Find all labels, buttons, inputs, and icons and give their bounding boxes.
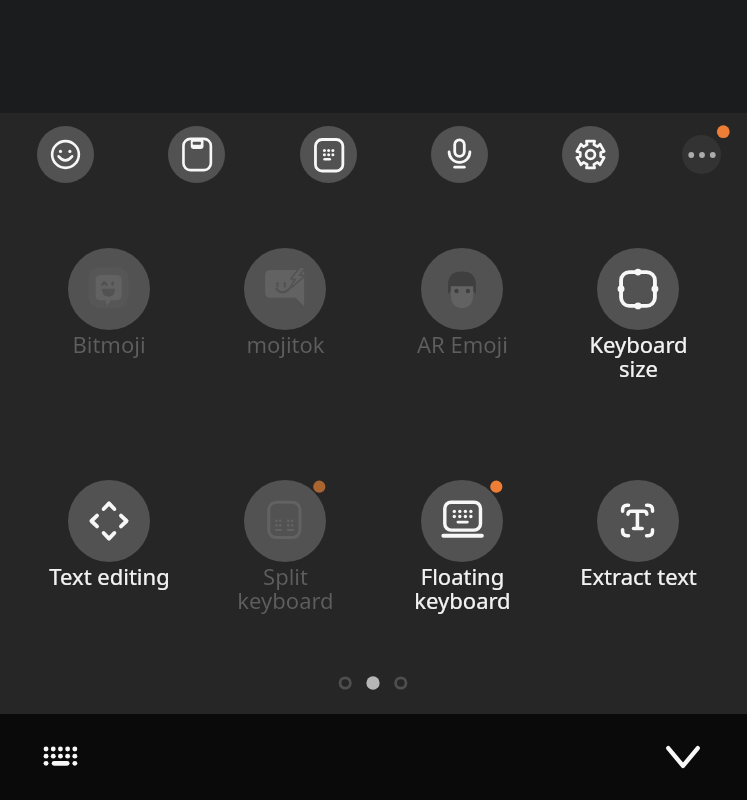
button[interactable]: Floating keyboard xyxy=(377,480,547,616)
staticText: Floating keyboard xyxy=(414,561,511,615)
button[interactable]: Keyboard size xyxy=(553,248,723,384)
button[interactable]: Voice input xyxy=(431,126,488,183)
staticText: Extract text xyxy=(580,561,697,591)
button[interactable]: Text editing xyxy=(24,480,194,592)
button[interactable]: AR Emoji xyxy=(377,248,547,360)
button[interactable]: Bitmoji xyxy=(24,248,194,360)
button[interactable]: Clipboard xyxy=(168,126,225,183)
button[interactable]: Extract text xyxy=(553,480,723,592)
staticText: Split keyboard xyxy=(237,561,334,615)
button[interactable]: mojitok xyxy=(200,248,370,360)
staticText: Text editing xyxy=(49,561,170,591)
staticText: Bitmoji xyxy=(72,329,146,359)
button[interactable]: Settings xyxy=(562,126,619,183)
button[interactable]: Show keyboard xyxy=(28,725,92,789)
staticText: mojitok xyxy=(246,329,325,359)
button[interactable]: Keyboard modes xyxy=(300,126,357,183)
button[interactable]: Split keyboard xyxy=(200,480,370,616)
staticText: AR Emoji xyxy=(417,329,508,359)
staticText: Keyboard size xyxy=(589,329,688,383)
button[interactable]: Emoji xyxy=(37,126,94,183)
button[interactable]: Collapse panel xyxy=(651,725,715,789)
button[interactable]: More options xyxy=(672,125,730,183)
